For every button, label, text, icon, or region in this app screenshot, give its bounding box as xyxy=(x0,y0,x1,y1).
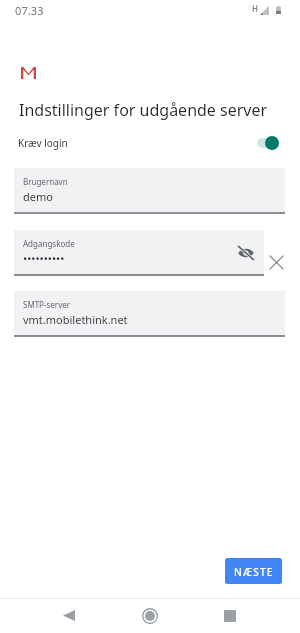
staticText: vmt.mobilethink.net xyxy=(23,312,128,327)
staticText: •••••••••• xyxy=(23,251,65,266)
button[interactable]: Home xyxy=(127,598,173,633)
staticText: H xyxy=(252,3,258,14)
staticText: Kræv login xyxy=(18,136,68,150)
staticText: demo xyxy=(23,189,53,204)
button[interactable]: Kræv login xyxy=(0,129,300,157)
staticText: NÆSTE xyxy=(234,565,274,579)
button[interactable]: Vis adgangskode xyxy=(236,243,256,263)
button[interactable]: Adgangskode xyxy=(14,230,264,274)
staticText: Adgangskode xyxy=(23,238,75,249)
staticText: Brugernavn xyxy=(23,176,68,187)
button[interactable] xyxy=(257,135,285,151)
staticText: 07.33 xyxy=(15,3,44,18)
button[interactable]: Recents xyxy=(207,598,253,633)
button[interactable]: Brugernavn xyxy=(14,168,285,214)
button[interactable]: Back xyxy=(46,598,92,633)
button[interactable]: NÆSTE xyxy=(225,558,282,584)
button[interactable]: Ryd xyxy=(265,251,287,273)
staticText: Indstillinger for udgående server xyxy=(19,99,268,121)
button[interactable]: SMTP-server xyxy=(14,291,285,337)
staticText: SMTP-server xyxy=(23,299,71,310)
